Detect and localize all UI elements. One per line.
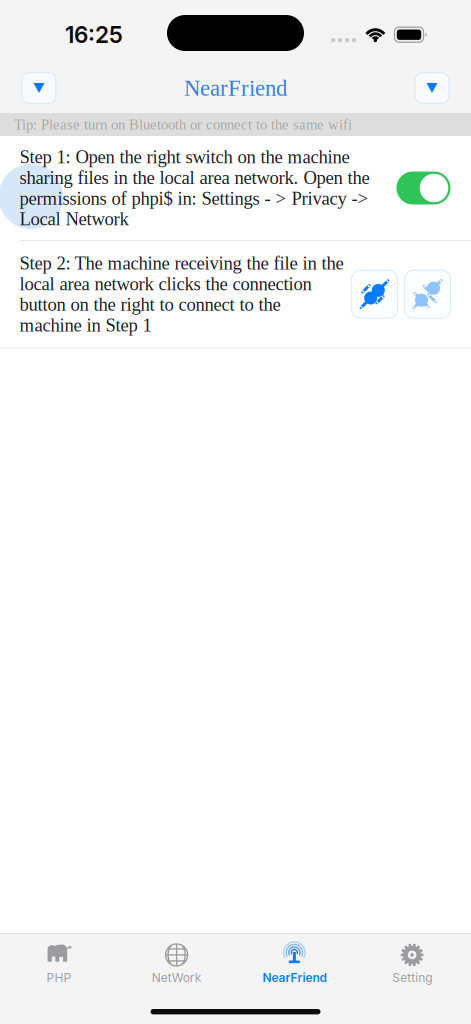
button[interactable]: Disconnect from machine — [351, 270, 397, 318]
button[interactable]: NearFriend — [235, 933, 353, 990]
button[interactable]: NetWork — [118, 933, 236, 990]
button[interactable]: Setting — [353, 933, 471, 990]
staticText: Tip: Please turn on Bluetooth or connect… — [14, 116, 352, 133]
staticText: Step 2: The machine receiving the file i… — [19, 253, 343, 336]
staticText: NearFriend — [184, 75, 287, 100]
button[interactable]: Connect to machine — [404, 270, 450, 318]
staticText: 16:25 — [65, 21, 123, 48]
staticText: PHP — [46, 970, 71, 985]
staticText: Setting — [392, 970, 432, 985]
button[interactable]: More options — [415, 72, 449, 103]
button[interactable]: Local network file sharing — [396, 171, 450, 204]
staticText: NetWork — [152, 970, 202, 985]
staticText: NearFriend — [262, 970, 326, 985]
button[interactable]: Devices menu — [22, 72, 56, 103]
button[interactable]: PHP — [0, 933, 118, 990]
staticText: Step 1: Open the right switch on the mac… — [19, 147, 369, 229]
